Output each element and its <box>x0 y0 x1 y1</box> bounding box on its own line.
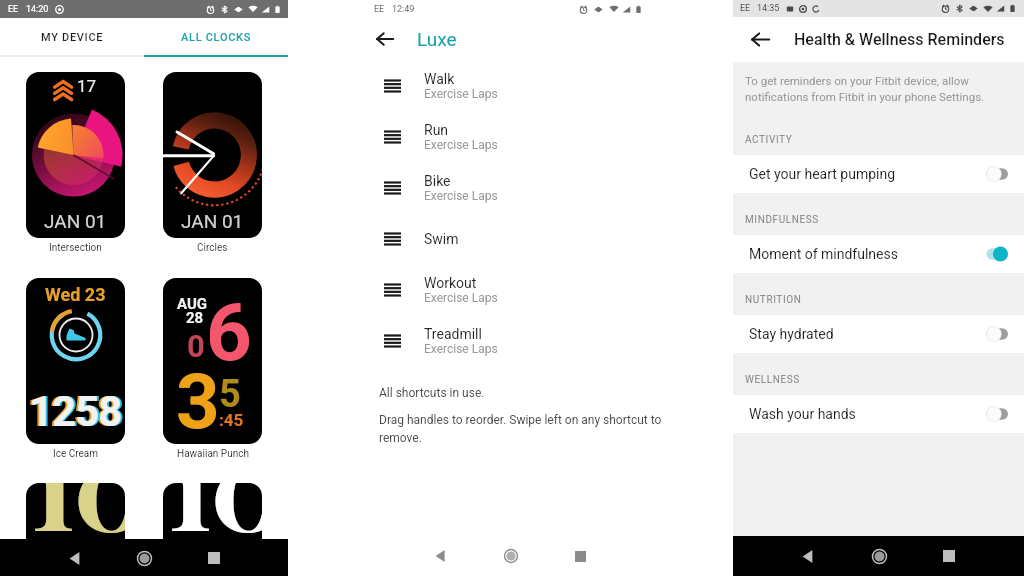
staticText: :45 <box>219 410 244 430</box>
staticText: 28 <box>186 309 204 327</box>
staticText: Swim <box>424 231 459 247</box>
staticText: Drag handles to reorder. Swipe left on a… <box>379 413 671 445</box>
staticText: Wash your hands <box>749 406 856 422</box>
button[interactable]: 17 <box>26 72 125 238</box>
button[interactable]: Walk <box>288 60 733 111</box>
button[interactable]: Home <box>127 541 161 575</box>
staticText: 5 <box>219 372 241 417</box>
staticText: Hawaiian Punch <box>177 448 249 460</box>
staticText: AUG <box>177 295 208 313</box>
button[interactable]: JAN 01 <box>163 72 262 238</box>
button[interactable]: Wash your hands <box>733 395 1024 433</box>
staticText: 1258 <box>27 387 120 436</box>
button[interactable]: ALL CLOCKS <box>144 18 288 57</box>
button[interactable]: MY DEVICE <box>0 18 144 57</box>
button[interactable]: Get your heart pumping <box>733 155 1024 193</box>
staticText: Moment of mindfulness <box>749 246 898 262</box>
staticText: WELLNESS <box>745 374 800 386</box>
button[interactable]: Wed 23 <box>26 278 125 444</box>
staticText: EE <box>740 3 751 14</box>
staticText: Run <box>424 122 449 138</box>
button[interactable]: Recents <box>565 541 595 571</box>
staticText: Bike <box>424 173 451 189</box>
staticText: Stay hydrated <box>749 326 834 342</box>
staticText: Get your heart pumping <box>749 166 896 182</box>
button[interactable]: Swim <box>288 213 733 264</box>
staticText: 17 <box>77 76 97 96</box>
staticText: 6 <box>206 286 252 380</box>
staticText: JAN 01 <box>181 210 244 232</box>
staticText: Exercise Laps <box>424 189 498 203</box>
staticText: Treadmill <box>424 326 482 342</box>
button[interactable]: 10 <box>163 483 262 563</box>
button[interactable]: Bike <box>288 162 733 213</box>
button[interactable]: Home <box>496 541 526 571</box>
button[interactable]: Back <box>58 541 92 575</box>
button[interactable]: Back <box>791 539 825 573</box>
staticText: Luxe <box>417 28 457 50</box>
staticText: EE <box>8 4 19 15</box>
staticText: 12:49 <box>392 4 415 15</box>
staticText: Exercise Laps <box>424 342 498 356</box>
staticText: MY DEVICE <box>41 31 104 44</box>
staticText: Exercise Laps <box>424 291 498 305</box>
staticText: 14:35 <box>757 3 780 14</box>
button[interactable]: AUG <box>163 278 262 444</box>
staticText: Ice Cream <box>53 448 99 460</box>
button[interactable]: Recents <box>932 539 966 573</box>
staticText: Walk <box>424 71 455 87</box>
button[interactable]: Workout <box>288 264 733 315</box>
staticText: 1258 <box>31 387 124 436</box>
staticText: 10 <box>30 483 125 560</box>
staticText: To get reminders on your Fitbit device, … <box>745 74 1016 103</box>
button[interactable]: Back <box>368 22 402 56</box>
button[interactable]: Moment of mindfulness <box>733 235 1024 273</box>
staticText: 0 <box>187 328 205 364</box>
button[interactable]: 10 <box>26 483 125 563</box>
staticText: Intersection <box>49 242 102 254</box>
button[interactable]: Treadmill <box>288 315 733 366</box>
button[interactable]: Home <box>862 539 896 573</box>
staticText: EE <box>374 4 385 15</box>
staticText: ACTIVITY <box>745 134 793 146</box>
button[interactable]: Back <box>426 541 456 571</box>
staticText: JAN 01 <box>44 210 107 232</box>
button[interactable]: Recents <box>197 541 231 575</box>
staticText: Health & Wellness Reminders <box>794 30 1005 49</box>
button[interactable]: Back <box>744 23 777 56</box>
staticText: Wed 23 <box>45 284 106 305</box>
staticText: All shortcuts in use. <box>379 386 485 400</box>
staticText: Exercise Laps <box>424 138 498 152</box>
staticText: 1258 <box>29 387 122 436</box>
staticText: 14:20 <box>26 4 49 15</box>
staticText: ALL CLOCKS <box>181 31 252 44</box>
staticText: NUTRITION <box>745 294 802 306</box>
staticText: Workout <box>424 275 477 291</box>
staticText: 10 <box>167 483 262 560</box>
button[interactable]: Stay hydrated <box>733 315 1024 353</box>
staticText: 3 <box>176 357 220 444</box>
staticText: MINDFULNESS <box>745 214 819 226</box>
staticText: Circles <box>197 242 228 254</box>
button[interactable]: Run <box>288 111 733 162</box>
staticText: Exercise Laps <box>424 87 498 101</box>
